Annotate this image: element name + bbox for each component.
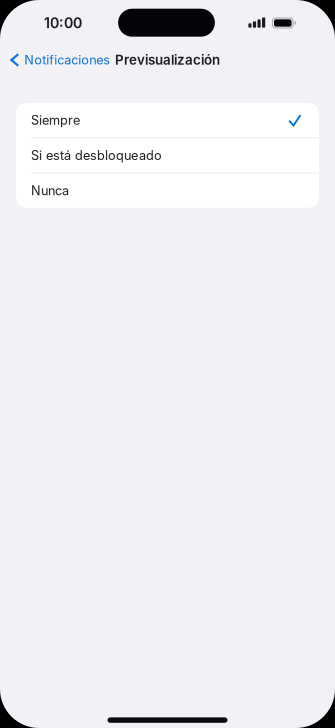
staticText: Previsualización — [115, 52, 220, 68]
staticText: 10:00 — [44, 14, 82, 31]
button[interactable]: Notificaciones — [0, 46, 120, 74]
button[interactable]: Nunca — [16, 173, 319, 208]
staticText: Siempre — [31, 113, 80, 128]
staticText: Nunca — [31, 183, 69, 198]
staticText: Si está desbloqueado — [31, 148, 162, 163]
button[interactable]: Siempre — [16, 103, 319, 137]
button[interactable]: Si está desbloqueado — [16, 138, 319, 173]
staticText: Notificaciones — [24, 52, 110, 68]
